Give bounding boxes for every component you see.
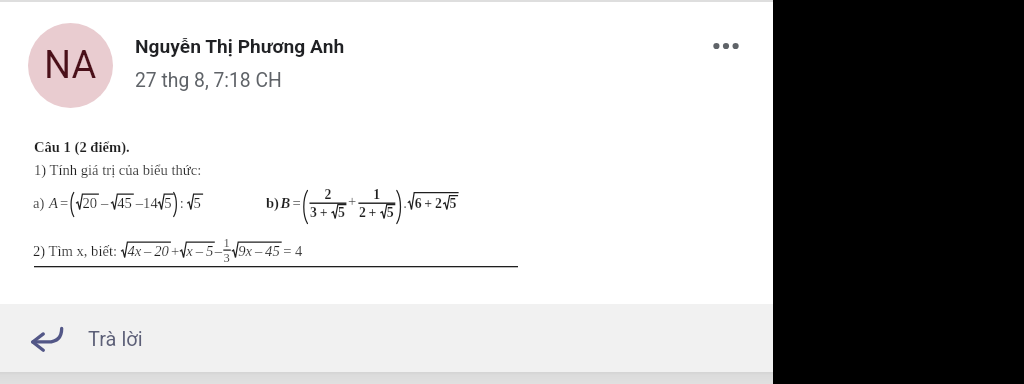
staticText: Trà lời [88, 327, 143, 350]
button[interactable]: Nguyễn Thị Phương Anh [135, 35, 345, 92]
staticText: Nguyễn Thị Phương Anh [135, 35, 345, 58]
staticText: NA [44, 43, 97, 88]
button[interactable]: More options [703, 23, 748, 68]
button[interactable]: Reply [0, 304, 773, 372]
staticText: 27 thg 8, 7:18 CH [135, 69, 282, 92]
other: Reply [26, 316, 70, 360]
button[interactable]: Nguyễn Thị Phương Anh profile [28, 23, 113, 108]
